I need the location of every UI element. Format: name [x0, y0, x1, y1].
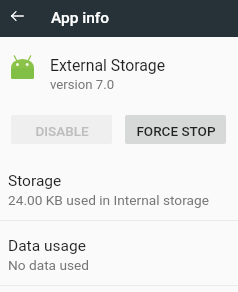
- button[interactable]: Storage: [0, 156, 238, 220]
- button[interactable]: Navigate up: [0, 0, 34, 34]
- staticText: External Storage: [50, 56, 166, 75]
- button[interactable]: DISABLE: [11, 115, 112, 144]
- staticText: Storage: [8, 172, 62, 190]
- staticText: App info: [51, 9, 110, 27]
- button[interactable]: FORCE STOP: [125, 115, 226, 144]
- staticText: Data usage: [8, 237, 86, 255]
- staticText: FORCE STOP: [136, 123, 216, 139]
- staticText: No data used: [8, 257, 90, 273]
- staticText: 24.00 KB used in Internal storage: [8, 192, 209, 208]
- staticText: DISABLE: [35, 123, 89, 139]
- staticText: version 7.0: [50, 77, 115, 92]
- button[interactable]: Data usage: [0, 221, 238, 285]
